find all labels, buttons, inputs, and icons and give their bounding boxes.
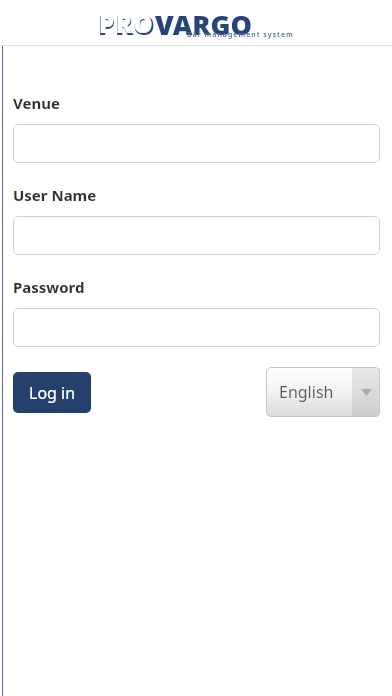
staticText: VARGO xyxy=(155,6,253,40)
staticText: PRO xyxy=(99,7,155,40)
staticText: Log in xyxy=(29,382,76,404)
button[interactable]: Password xyxy=(13,308,380,347)
staticText: English xyxy=(279,381,334,403)
button[interactable]: Venue xyxy=(13,124,380,163)
staticText: User Name xyxy=(13,185,97,205)
staticText: Password xyxy=(13,277,85,297)
staticText: Bar management system xyxy=(187,30,294,40)
staticText: PRO xyxy=(98,6,155,40)
button[interactable]: Log in xyxy=(13,372,91,413)
button[interactable]: Select language: English xyxy=(266,367,380,417)
button[interactable]: User Name xyxy=(13,216,380,255)
staticText: Venue xyxy=(13,93,60,113)
